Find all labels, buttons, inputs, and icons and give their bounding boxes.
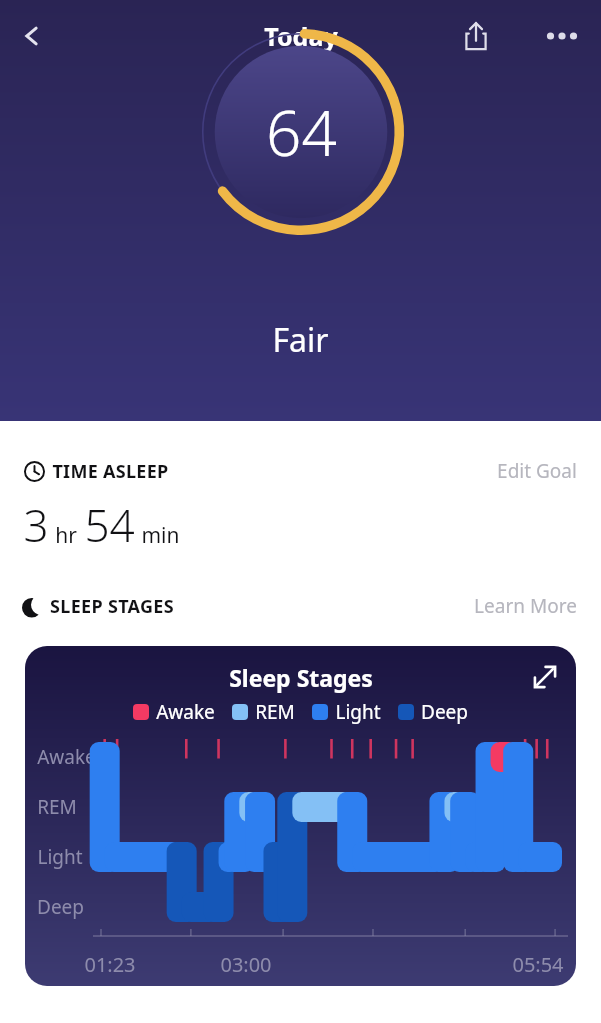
staticText: 64 [266, 90, 337, 174]
staticText: TIME ASLEEP [52, 459, 169, 484]
staticText: 01:23 [84, 951, 136, 978]
button[interactable]: Learn More [474, 593, 577, 619]
staticText: REM [37, 794, 77, 820]
staticText: Awake [37, 744, 96, 770]
staticText: Awake [156, 699, 215, 725]
staticText: Light [335, 699, 381, 725]
staticText: Deep [421, 699, 468, 725]
staticText: min [141, 521, 180, 550]
button[interactable]: Expand chart [522, 654, 568, 700]
staticText: 3 [23, 495, 49, 555]
staticText: 05:54 [512, 951, 564, 978]
staticText: Sleep Stages [229, 662, 373, 693]
staticText: Edit Goal [497, 458, 577, 484]
button[interactable]: REM [232, 699, 295, 725]
staticText: Learn More [474, 593, 577, 619]
staticText: Fair [272, 318, 329, 362]
staticText: 54 [84, 495, 135, 555]
button[interactable]: Edit Goal [497, 458, 577, 484]
button[interactable]: Deep [398, 699, 468, 725]
button[interactable]: Back [6, 10, 58, 62]
staticText: hr [55, 521, 77, 550]
button[interactable]: Sleep Stages [25, 646, 576, 986]
button[interactable]: Share [451, 11, 501, 61]
button[interactable]: Light [312, 699, 381, 725]
staticText: 03:00 [220, 951, 272, 978]
button[interactable]: More options [535, 9, 589, 63]
button[interactable]: Awake [133, 699, 215, 725]
staticText: Light [37, 844, 83, 870]
staticText: Deep [37, 894, 84, 920]
staticText: REM [255, 699, 295, 725]
staticText: Today [264, 19, 338, 53]
staticText: SLEEP STAGES [50, 594, 174, 619]
